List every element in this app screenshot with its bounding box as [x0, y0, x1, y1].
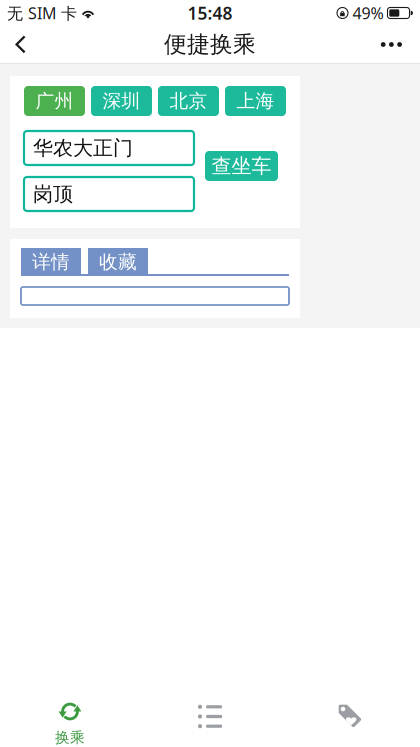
button[interactable]: 华农大正门 [24, 131, 194, 165]
staticText: 岗顶 [33, 182, 73, 206]
button[interactable]: 深圳 [91, 86, 152, 116]
staticText: 查坐车 [211, 154, 271, 178]
staticText: 上海 [236, 89, 274, 112]
button[interactable]: 查坐车 [205, 151, 278, 181]
button[interactable]: 广州 [24, 86, 85, 116]
button[interactable]: 收藏 [88, 248, 148, 276]
staticText: 广州 [35, 89, 73, 112]
button[interactable]: Back [15, 26, 59, 63]
button[interactable]: Favorites [280, 697, 420, 747]
button[interactable]: 北京 [158, 86, 219, 116]
staticText: 详情 [32, 250, 70, 273]
button[interactable]: More options [358, 26, 402, 63]
staticText: 无 SIM 卡 [7, 2, 77, 24]
staticText: 换乘 [55, 728, 85, 746]
button[interactable] [21, 287, 289, 305]
staticText: 收藏 [99, 250, 137, 273]
staticText: 便捷换乘 [164, 31, 256, 58]
staticText: 15:48 [187, 1, 232, 24]
staticText: 深圳 [102, 89, 140, 112]
button[interactable]: 详情 [21, 248, 81, 276]
staticText: 华农大正门 [33, 136, 133, 160]
staticText: 北京 [169, 89, 207, 112]
button[interactable]: 岗顶 [24, 177, 194, 211]
button[interactable]: 换乘 [0, 697, 140, 747]
staticText: 49% [352, 2, 383, 24]
button[interactable]: Lines [140, 697, 280, 747]
button[interactable]: 上海 [225, 86, 286, 116]
